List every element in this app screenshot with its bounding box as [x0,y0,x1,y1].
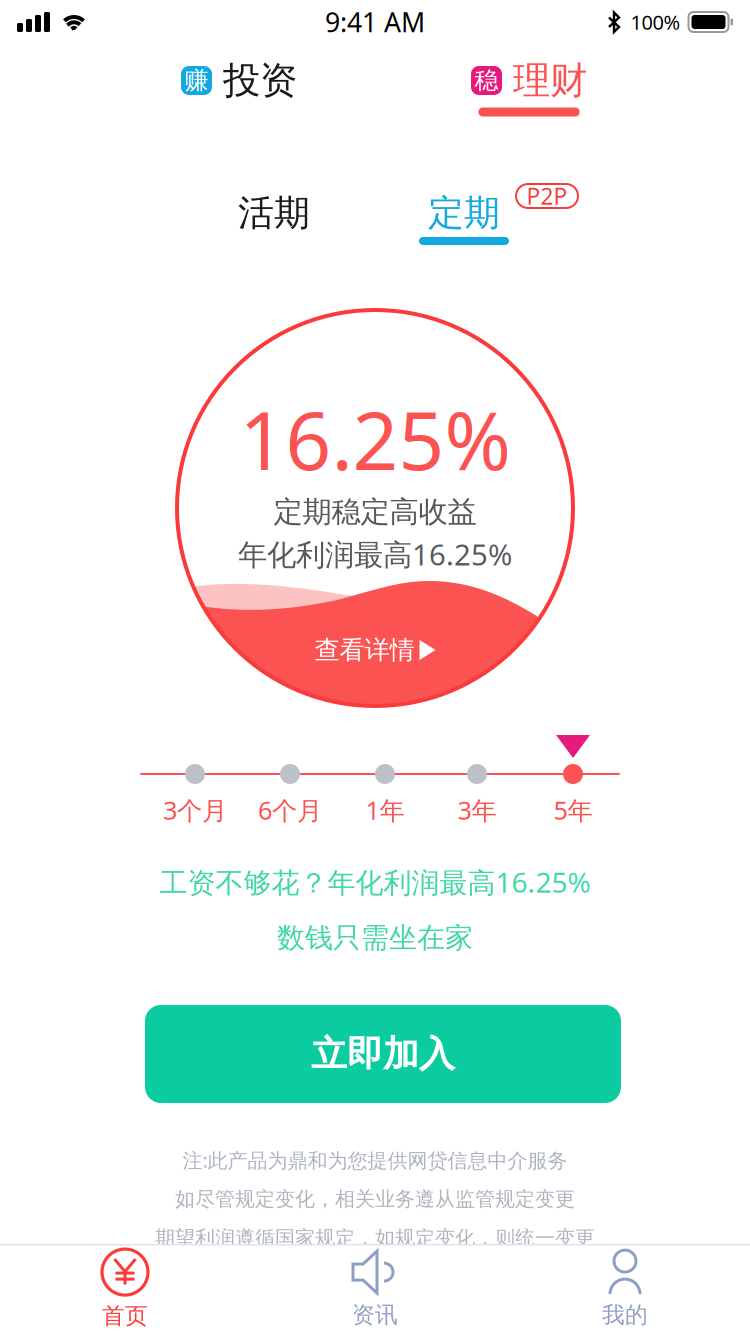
staticText: 5年 [553,793,592,827]
staticText: 活期 [238,191,310,235]
staticText: 期望利润遵循国家规定，如规定变化，则统一变更 [155,1226,595,1250]
button[interactable]: 赚 [139,52,339,122]
staticText: 查看详情 [314,634,414,665]
staticText: 100% [630,9,680,35]
staticText: 理财 [513,58,587,103]
button[interactable]: 首页 [0,1244,250,1334]
staticText: 3个月 [163,793,227,827]
staticText: 我的 [602,1301,648,1329]
staticText: 定期 [428,191,500,235]
staticText: 首页 [102,1302,148,1330]
staticText: 注:此产品为鼎和为您提供网贷信息中介服务 [182,1147,567,1173]
staticText: P2P [526,181,567,211]
staticText: 工资不够花？年化利润最高16.25% [159,863,590,901]
staticText: 定期稳定高收益 [273,494,476,530]
staticText: 1年 [365,793,404,827]
staticText: 立即加入 [311,1032,455,1076]
staticText: 投资 [223,58,297,103]
staticText: 数钱只需坐在家 [277,921,473,955]
staticText: 赚 [184,66,208,95]
button[interactable]: 资讯 [250,1244,500,1334]
button[interactable]: 稳 [429,52,629,122]
staticText: 16.25% [239,386,510,492]
staticText: 年化利润最高16.25% [238,534,512,573]
button[interactable]: 我的 [500,1244,750,1334]
staticText: 如尽管规定变化，相关业务遵从监管规定变更 [175,1187,575,1211]
staticText: 资讯 [352,1301,398,1329]
button[interactable]: 立即加入 [145,1005,621,1103]
staticText: 稳 [474,66,498,95]
button[interactable]: 查看详情 [177,634,573,666]
staticText: 6个月 [258,793,322,827]
button[interactable]: 活期 [219,190,329,236]
staticText: 3年 [457,793,496,827]
button[interactable]: 定期 [409,190,519,245]
staticText: 9:41 AM [325,4,425,40]
